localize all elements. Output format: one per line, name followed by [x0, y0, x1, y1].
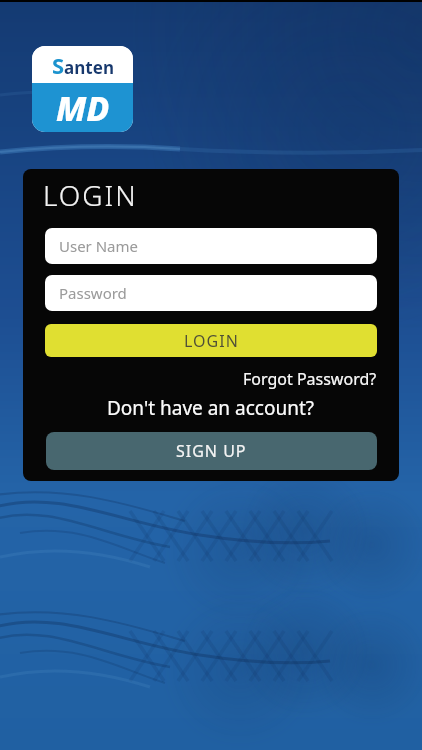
button[interactable]: Password: [45, 275, 377, 311]
staticText: Santen: [52, 50, 114, 80]
button[interactable]: Forgot Password?: [243, 368, 377, 390]
staticText: LOGIN: [43, 176, 138, 214]
staticText: User Name: [59, 236, 139, 256]
staticText: Don't have an account?: [107, 395, 315, 421]
button[interactable]: User Name: [45, 228, 377, 264]
button[interactable]: LOGIN: [45, 324, 377, 357]
button[interactable]: Santen: [32, 46, 133, 132]
button[interactable]: SIGN UP: [46, 432, 377, 470]
staticText: Password: [59, 283, 127, 303]
staticText: SIGN UP: [176, 440, 247, 462]
staticText: MD: [56, 85, 110, 131]
staticText: LOGIN: [184, 330, 239, 352]
